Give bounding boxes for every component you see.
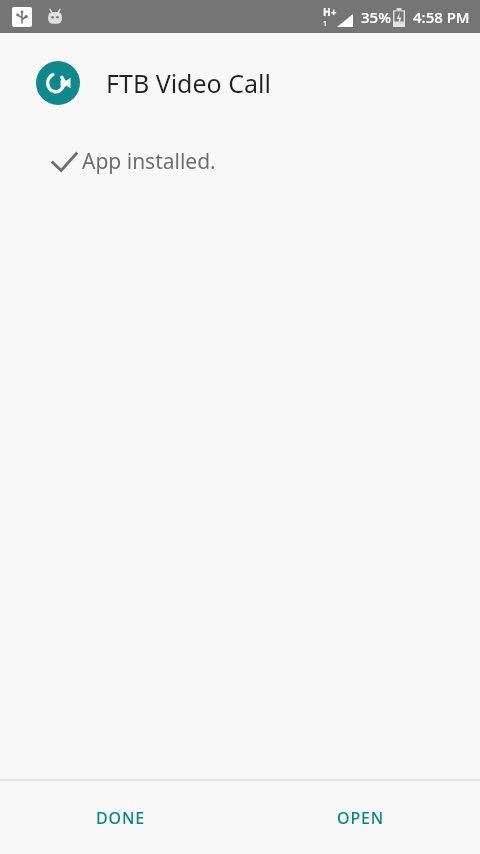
button[interactable]: OPEN <box>240 781 480 854</box>
staticText: OPEN <box>337 807 384 829</box>
staticText: 4:58 PM <box>413 7 470 27</box>
staticText: H+ <box>323 5 337 19</box>
staticText: DONE <box>96 807 145 829</box>
staticText: 35% <box>361 7 391 27</box>
staticText: App installed. <box>82 147 216 176</box>
button[interactable]: DONE <box>0 781 240 854</box>
staticText: 1 <box>323 19 328 29</box>
staticText: FTB Video Call <box>106 66 271 100</box>
